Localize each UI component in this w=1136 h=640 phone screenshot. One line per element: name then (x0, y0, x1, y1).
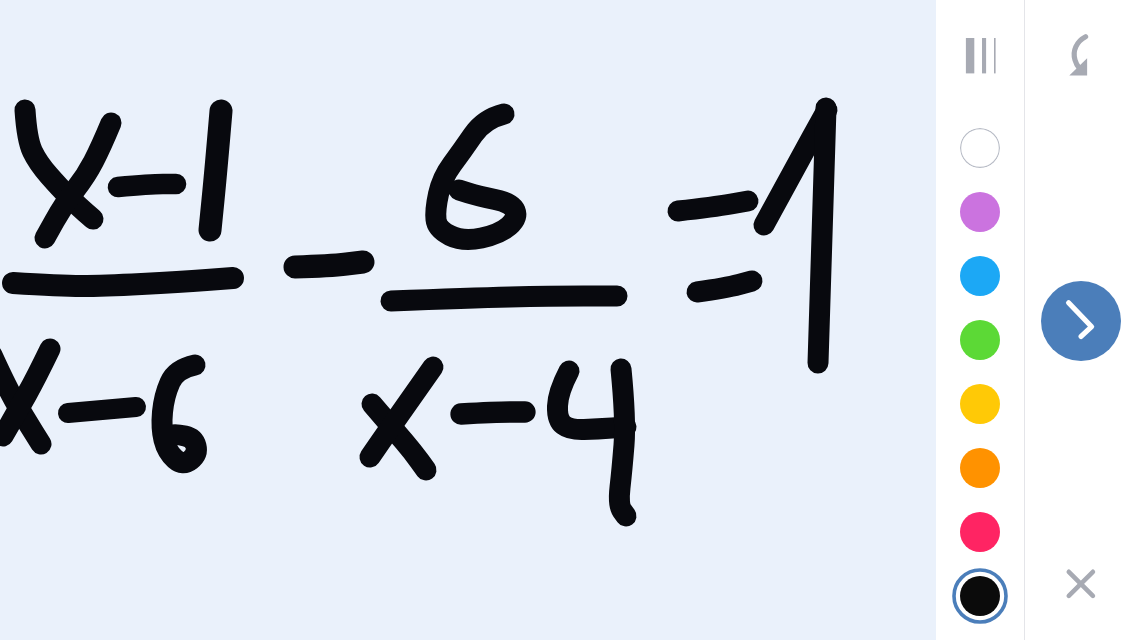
button[interactable]: Close (1055, 558, 1111, 614)
button[interactable]: Colour 4 (952, 312, 1008, 368)
button[interactable]: Undo (1058, 10, 1104, 102)
button[interactable]: Next (1041, 281, 1121, 361)
button[interactable]: Colour 2 (952, 184, 1008, 240)
button[interactable]: Colour 6 (952, 440, 1008, 496)
button[interactable]: Stroke width (952, 20, 1008, 76)
button[interactable]: Colour 5 (952, 376, 1008, 432)
button[interactable]: Drawing canvas (0, 0, 936, 640)
button[interactable]: Colour 3 (952, 248, 1008, 304)
button[interactable]: Colour 7 (952, 504, 1008, 560)
button[interactable]: Colour 1 (952, 120, 1008, 176)
button[interactable]: Colour 8 (952, 568, 1008, 624)
